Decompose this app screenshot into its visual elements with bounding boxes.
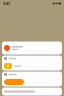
staticText: 9:41	[3, 1, 10, 6]
button[interactable]	[2, 77, 62, 86]
button[interactable]	[2, 41, 62, 54]
button[interactable]	[2, 87, 62, 95]
button[interactable]	[2, 61, 62, 70]
